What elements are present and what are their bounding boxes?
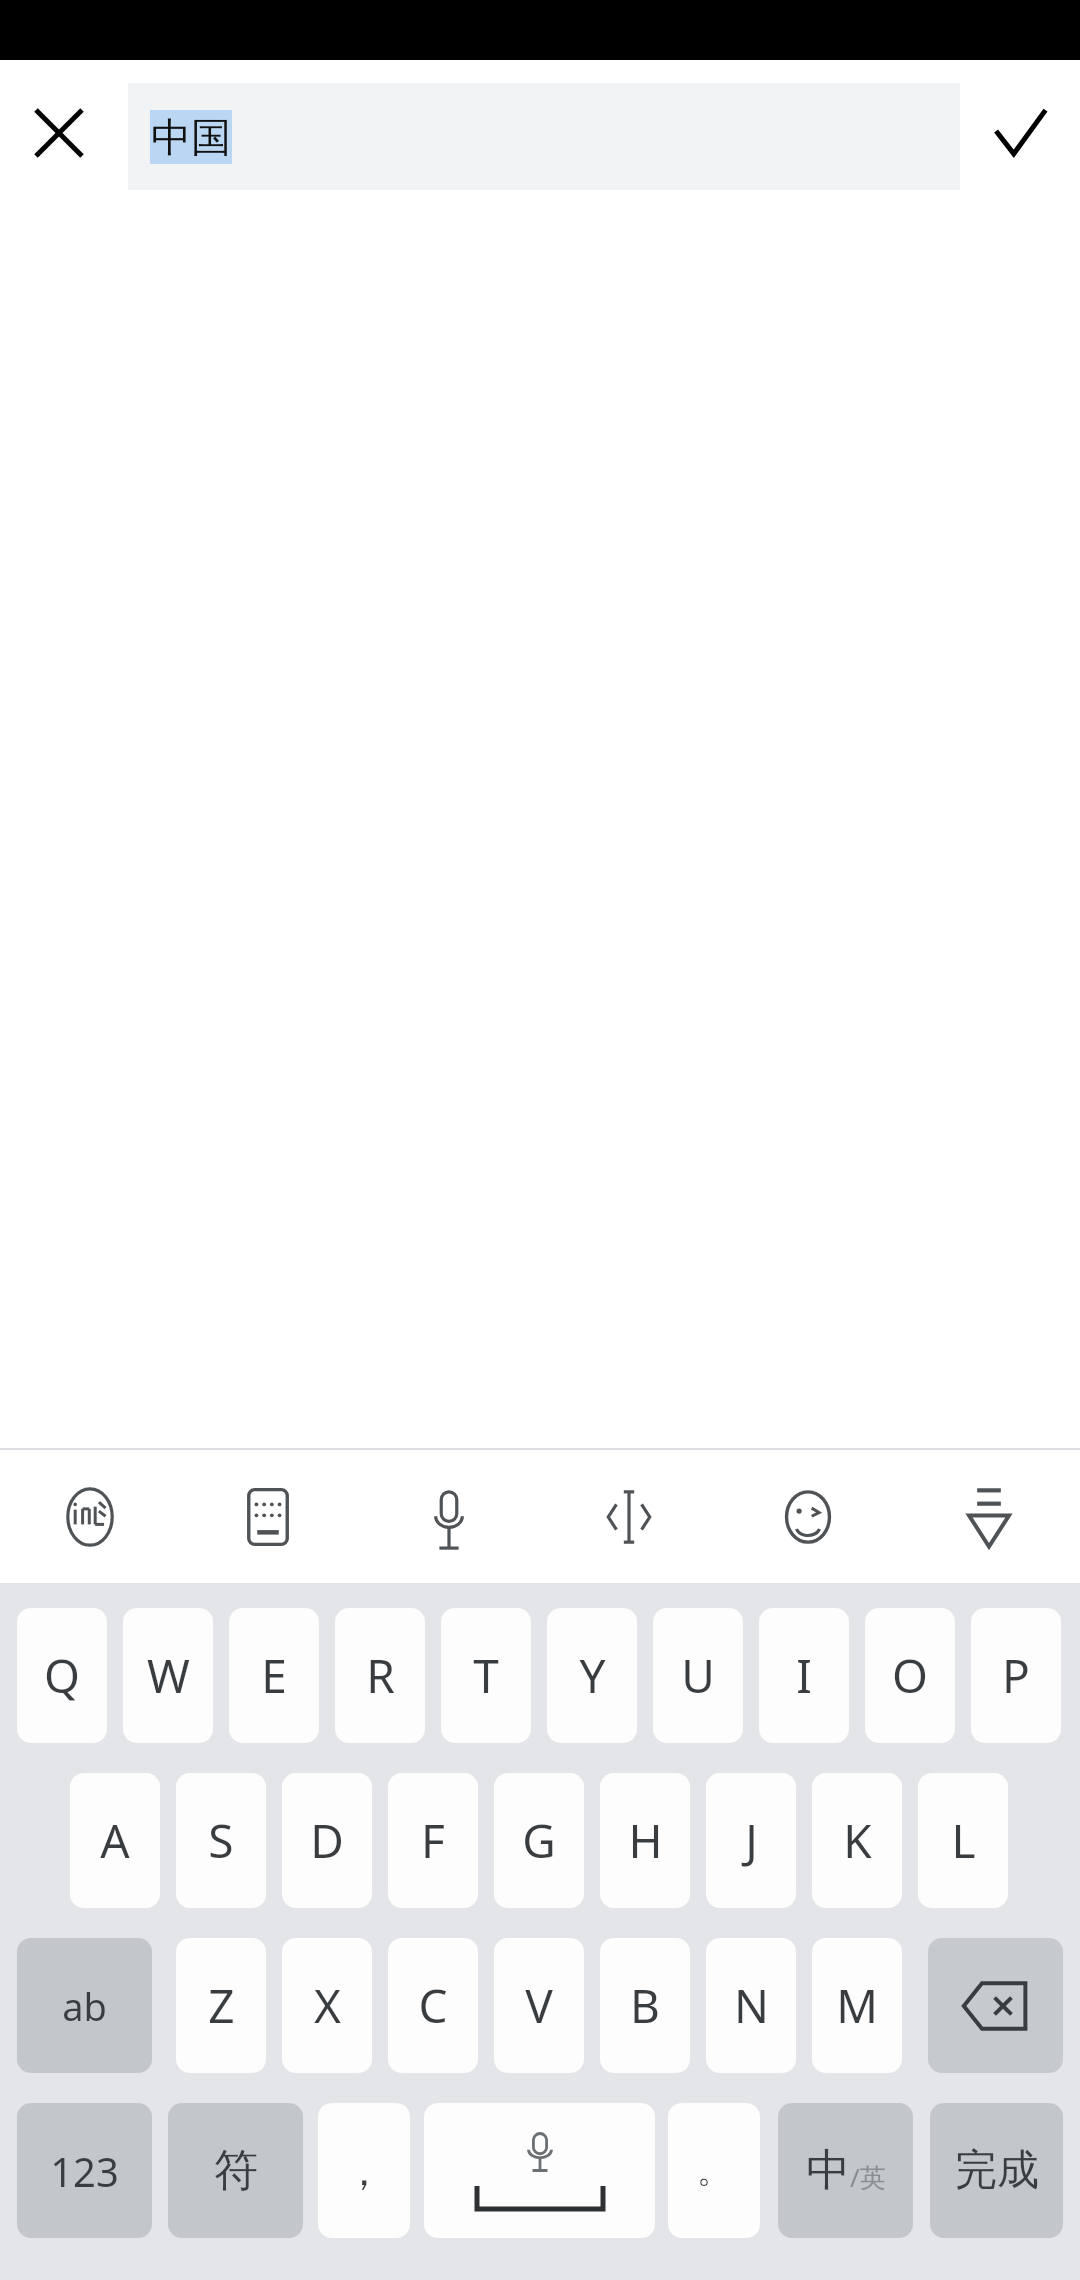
button[interactable]: J [706,1773,796,1908]
button[interactable]: Backspace [928,1938,1063,2073]
button[interactable]: Hide keyboard [923,1456,1055,1577]
staticText: K [843,1809,872,1872]
button[interactable]: Emoji [742,1456,874,1577]
staticText: A [100,1809,130,1872]
button[interactable]: G [494,1773,584,1908]
button[interactable]: 。 [668,2103,760,2238]
button[interactable]: Space [424,2103,655,2238]
button[interactable]: H [600,1773,690,1908]
staticText: O [892,1644,928,1707]
staticText: H [628,1809,663,1872]
button[interactable]: K [812,1773,902,1908]
button[interactable]: X [282,1938,372,2073]
staticText: R [366,1644,395,1707]
button[interactable]: N [706,1938,796,2073]
button[interactable]: O [865,1608,955,1743]
staticText: 123 [50,2144,119,2198]
staticText: M [836,1974,878,2037]
button[interactable]: Voice input [383,1456,515,1577]
button[interactable]: Keyboard layout [202,1456,334,1577]
button[interactable]: B [600,1938,690,2073]
button[interactable]: Close [4,78,114,188]
button[interactable]: C [388,1938,478,2073]
button[interactable]: 符 [168,2103,303,2238]
button[interactable]: M [812,1938,902,2073]
staticText: B [630,1974,660,2037]
staticText: V [525,1974,553,2037]
button[interactable]: U [653,1608,743,1743]
button[interactable]: ab [17,1938,152,2073]
button[interactable]: iFlytek input settings [24,1456,156,1577]
button[interactable]: A [70,1773,160,1908]
staticText: 中 [806,2143,850,2198]
staticText: W [147,1644,190,1707]
staticText: U [681,1644,715,1707]
staticText: I [796,1644,812,1707]
button[interactable]: Cursor move [563,1456,695,1577]
button[interactable]: F [388,1773,478,1908]
button[interactable]: I [759,1608,849,1743]
button[interactable]: Confirm [965,78,1075,188]
staticText: F [421,1809,445,1872]
staticText: 完成 [955,2144,1039,2197]
button[interactable]: E [229,1608,319,1743]
staticText: D [310,1809,344,1872]
button[interactable]: 中国 [128,83,960,190]
staticText: T [473,1644,499,1707]
button[interactable]: ， [318,2103,410,2238]
staticText: Z [208,1974,235,2037]
button[interactable]: T [441,1608,531,1743]
staticText: C [418,1974,448,2037]
button[interactable]: S [176,1773,266,1908]
staticText: 。 [697,2149,731,2192]
staticText: N [734,1974,769,2037]
staticText: Y [579,1644,606,1707]
staticText: L [951,1809,976,1872]
staticText: J [745,1809,758,1872]
staticText: Q [44,1644,80,1707]
staticText: ab [62,1980,107,2032]
staticText: 中国 [151,112,231,162]
staticText: G [522,1809,556,1872]
staticText: E [261,1644,287,1707]
button[interactable]: L [918,1773,1008,1908]
button[interactable]: R [335,1608,425,1743]
button[interactable]: 中 [778,2103,913,2238]
staticText: 符 [214,2143,258,2198]
button[interactable]: Y [547,1608,637,1743]
staticText: P [1002,1644,1030,1707]
button[interactable]: D [282,1773,372,1908]
button[interactable]: P [971,1608,1061,1743]
staticText: S [208,1809,234,1872]
staticText: ， [344,2146,384,2196]
button[interactable]: Z [176,1938,266,2073]
staticText: /英 [850,2159,886,2195]
button[interactable]: 完成 [930,2103,1063,2238]
button[interactable]: Q [17,1608,107,1743]
staticText: X [314,1974,341,2037]
button[interactable]: 123 [17,2103,152,2238]
button[interactable]: W [123,1608,213,1743]
button[interactable]: V [494,1938,584,2073]
